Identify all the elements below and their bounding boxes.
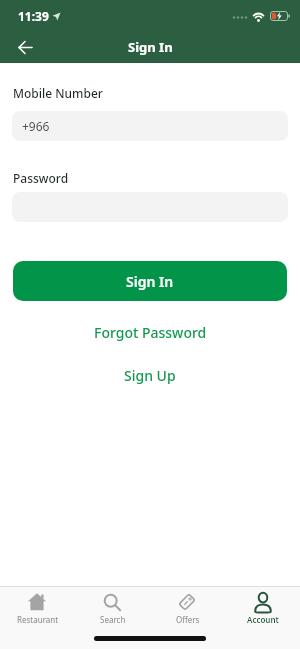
staticText: Restaurant <box>17 614 59 625</box>
button[interactable]: Offers <box>150 587 225 649</box>
button[interactable]: +966 <box>12 111 288 141</box>
staticText: Sign In <box>126 272 174 291</box>
button[interactable]: Sign In <box>13 261 287 301</box>
button[interactable]: Forgot Password <box>94 323 207 342</box>
staticText: Search <box>100 614 126 625</box>
staticText: Password <box>13 170 69 186</box>
staticText: Sign Up <box>124 366 176 385</box>
button[interactable]: Sign Up <box>124 366 176 385</box>
staticText: Account <box>247 614 279 625</box>
staticText: +966 <box>22 118 50 134</box>
staticText: 11:39 <box>18 8 49 24</box>
staticText: Forgot Password <box>94 323 207 342</box>
staticText: Sign In <box>128 38 173 56</box>
button[interactable] <box>10 32 40 62</box>
button[interactable]: Restaurant <box>0 587 75 649</box>
button[interactable]: Account <box>225 587 300 649</box>
staticText: Offers <box>176 614 200 625</box>
button[interactable]: Search <box>75 587 150 649</box>
staticText: Mobile Number <box>13 85 103 101</box>
